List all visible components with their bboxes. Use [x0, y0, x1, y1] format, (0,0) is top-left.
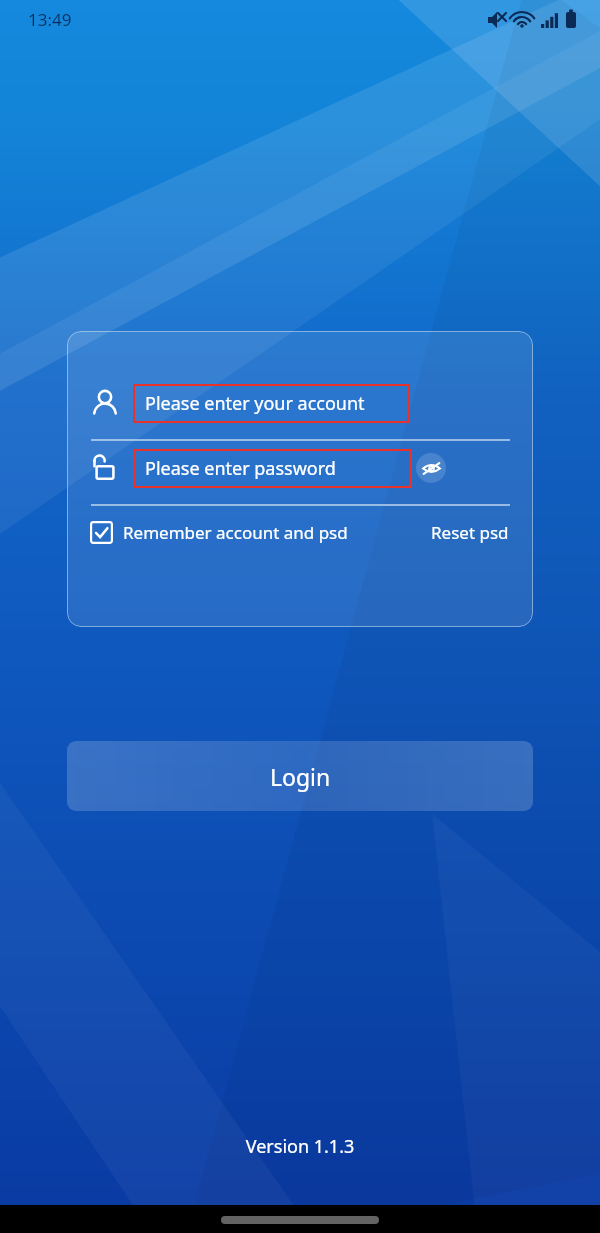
staticText: Login [270, 761, 331, 792]
staticText: 13:49 [28, 8, 72, 31]
button[interactable]: Login [67, 741, 533, 811]
staticText: Please enter password [145, 456, 336, 481]
staticText: Version 1.1.3 [0, 1134, 600, 1159]
button[interactable]: Show password [416, 453, 446, 483]
staticText: Please enter your account [145, 391, 365, 416]
button[interactable]: Please enter password [67, 441, 533, 495]
staticText: Reset psd [431, 521, 509, 544]
staticText: Remember account and psd [123, 521, 348, 544]
button[interactable]: Remember account and psd [67, 521, 348, 544]
button[interactable]: Reset psd [427, 517, 513, 548]
button[interactable]: Please enter your account [67, 376, 533, 430]
